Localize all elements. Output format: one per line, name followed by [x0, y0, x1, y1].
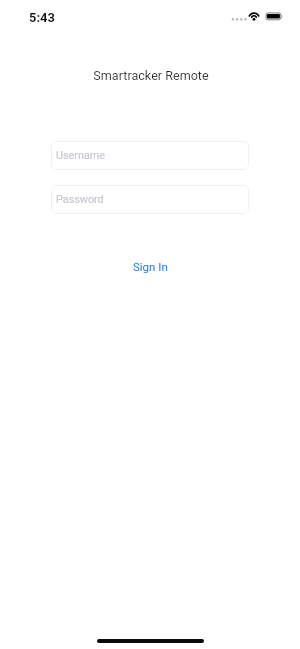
button[interactable]: Password — [51, 185, 249, 214]
staticText: 5:43 — [29, 10, 55, 25]
staticText: Username — [56, 149, 105, 162]
button[interactable]: Username — [51, 141, 249, 170]
other: Wi-Fi — [248, 11, 261, 22]
staticText: Smartracker Remote — [1, 68, 300, 83]
staticText: Sign In — [133, 260, 168, 273]
staticText: Password — [56, 193, 104, 206]
button[interactable]: Sign In — [121, 257, 180, 276]
other: Battery — [264, 11, 286, 22]
